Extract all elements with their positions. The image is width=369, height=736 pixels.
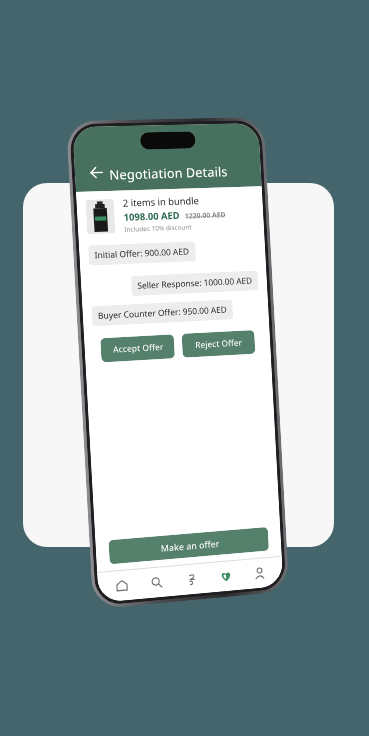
button[interactable]: Seller Response: 1000.00 AED [131,270,259,296]
staticText: Initial Offer: 900.00 AED [94,245,190,261]
button[interactable]: Activity [176,564,208,595]
staticText: 1220.00 AED [185,210,226,222]
staticText: Accept Offer [113,341,164,356]
staticText: Make an offer [160,537,220,554]
button[interactable]: 2 items in bundle [85,192,255,235]
button[interactable]: Favourites [210,561,242,591]
button[interactable]: Make an offer [108,527,269,564]
button[interactable]: Initial Offer: 900.00 AED [88,241,196,266]
button[interactable]: Search [140,567,173,598]
button[interactable]: Profile [244,558,276,588]
staticText: Seller Response: 1000.00 AED [137,275,253,292]
button[interactable]: Reject Offer [181,330,255,358]
staticText: 1098.00 AED [123,209,180,224]
staticText: Negotiation Details [109,162,229,184]
staticText: Reject Offer [194,337,243,351]
button[interactable]: Home [105,570,139,601]
button[interactable]: Accept Offer [100,334,175,362]
button[interactable]: Back [82,159,110,186]
staticText: Includes 10% discount [124,222,193,234]
button[interactable]: Buyer Counter Offer: 950.00 AED [91,299,233,326]
staticText: Buyer Counter Offer: 950.00 AED [98,304,227,322]
staticText: 2 items in bundle [122,194,200,210]
